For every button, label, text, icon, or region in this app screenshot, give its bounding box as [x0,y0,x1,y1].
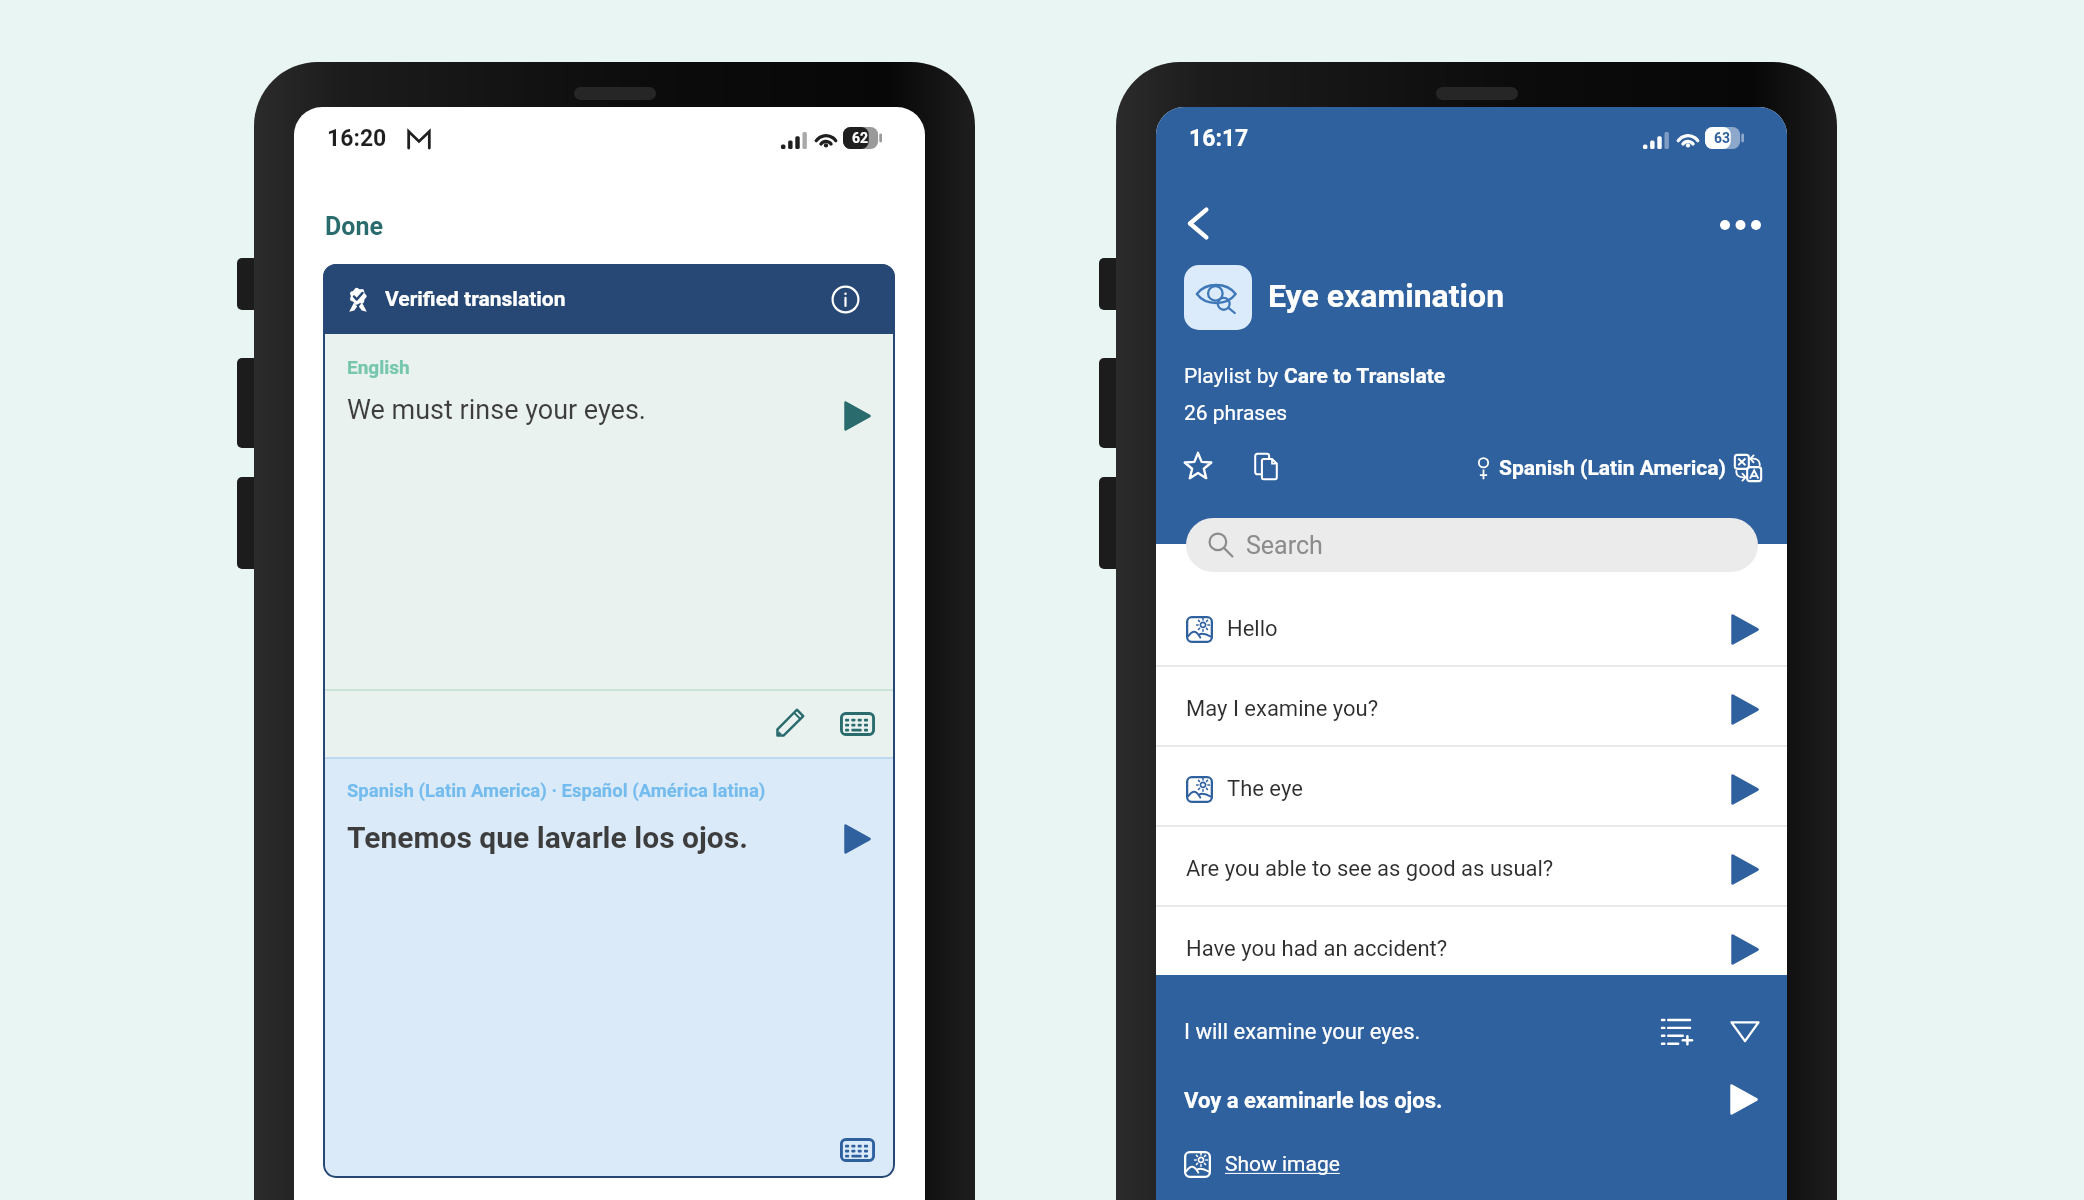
staticText: 62 [852,130,869,146]
button[interactable]: Collapse [1720,1006,1770,1056]
staticText: Spanish (Latin America) · Español (Améri… [347,780,766,802]
staticText: We must rinse your eyes. [347,394,646,426]
staticText: Verified translation [385,287,566,312]
button[interactable]: Search [1186,518,1758,572]
button[interactable]: Play English [844,402,870,430]
button[interactable]: Done [325,212,383,241]
button[interactable]: Play "Have you had an accident?" [1722,927,1766,971]
staticText: 16:20 [327,125,387,152]
staticText: The eye [1227,776,1303,802]
staticText: Tenemos que lavarle los ojos. [347,820,748,855]
button[interactable]: Play [1730,1085,1757,1114]
button[interactable]: Hello [1156,587,1787,667]
staticText: Are you able to see as good as usual? [1186,856,1554,882]
staticText: May I examine you? [1186,696,1379,722]
button[interactable]: Play Spanish [844,825,870,853]
staticText: Have you had an accident? [1186,936,1448,962]
button[interactable]: Show image [1184,1151,1340,1178]
button[interactable]: May I examine you? [1156,667,1787,747]
button[interactable]: Keyboard [840,1138,875,1162]
staticText: Care to Translate [1284,364,1446,389]
staticText: Done [325,212,383,241]
button[interactable]: Spanish (Latin America) [1477,450,1762,486]
button[interactable]: Have you had an accident? [1156,907,1787,987]
button[interactable]: Information [831,285,860,314]
button[interactable]: Back [1172,197,1224,249]
button[interactable]: More options [1716,201,1764,249]
staticText: Show image [1225,1152,1340,1177]
staticText: Voy a examinarle los ojos. [1184,1088,1443,1114]
button[interactable]: Edit [776,708,805,737]
button[interactable]: Play "Hello" [1722,607,1766,651]
staticText: 26 phrases [1184,401,1288,426]
staticText: Playlist by [1184,364,1284,389]
button[interactable]: Play "Are you able to see as good as usu… [1722,847,1766,891]
button[interactable]: The eye [1156,747,1787,827]
button[interactable]: Add to playlist [1652,1006,1702,1056]
button[interactable]: Are you able to see as good as usual? [1156,827,1787,907]
button[interactable]: Copy [1245,445,1287,487]
staticText: Eye examination [1268,277,1505,315]
staticText: 63 [1714,130,1731,146]
staticText: I will examine your eyes. [1184,1019,1421,1045]
staticText: Search [1246,531,1323,560]
staticText: Hello [1227,616,1278,642]
button[interactable]: Play "The eye" [1722,767,1766,811]
staticText: Spanish (Latin America) [1499,456,1726,481]
button[interactable]: Keyboard [840,712,875,736]
button[interactable]: Favourite [1175,443,1221,489]
staticText: 16:17 [1189,125,1249,152]
staticText: English [347,356,410,378]
button[interactable]: Play "May I examine you?" [1722,687,1766,731]
